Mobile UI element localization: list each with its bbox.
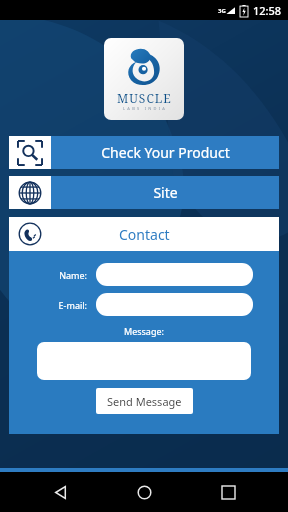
- button[interactable]: Name:: [96, 263, 253, 286]
- staticText: 12:58: [253, 3, 282, 18]
- staticText: Name:: [59, 269, 87, 281]
- other: Website: [18, 181, 42, 205]
- button[interactable]: Back: [36, 472, 84, 512]
- staticText: Check Your Product: [101, 143, 230, 162]
- staticText: Message:: [124, 325, 164, 337]
- other: Contact: [18, 222, 42, 246]
- staticText: Contact: [119, 225, 170, 244]
- staticText: Send Message: [107, 394, 182, 409]
- staticText: 3G: [218, 7, 226, 15]
- staticText: MUSCLE: [117, 90, 172, 106]
- button[interactable]: Message field: [37, 342, 251, 380]
- button[interactable]: Muscle Labs India logo: [104, 38, 184, 120]
- button[interactable]: Scan product: [9, 136, 279, 169]
- button[interactable]: Recents: [204, 472, 252, 512]
- staticText: E-mail:: [58, 299, 87, 311]
- button[interactable]: Send Message: [96, 388, 193, 414]
- staticText: Site: [153, 183, 178, 202]
- button[interactable]: Home: [120, 472, 168, 512]
- other: Scan product: [17, 140, 43, 166]
- staticText: L A B S I N D I A: [123, 106, 166, 111]
- button[interactable]: Website: [9, 176, 279, 209]
- button[interactable]: Contact: [9, 217, 279, 251]
- button[interactable]: E-mail:: [96, 293, 253, 316]
